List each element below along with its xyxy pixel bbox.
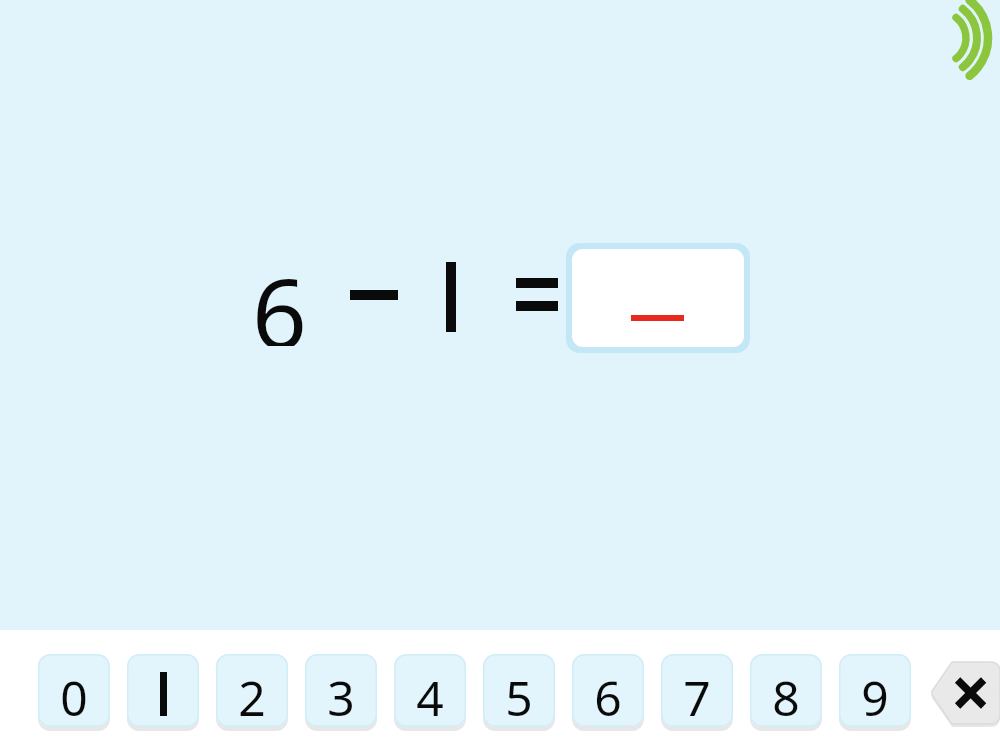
button[interactable]: Answer field — [566, 243, 750, 353]
staticText: 6 — [252, 246, 312, 346]
staticText: 4 — [394, 665, 466, 721]
staticText: 6 — [572, 665, 644, 721]
button[interactable]: 0 — [38, 654, 110, 727]
staticText: 0 — [38, 665, 110, 721]
button[interactable]: 9 — [839, 654, 911, 727]
button[interactable]: 6 — [572, 654, 644, 727]
staticText: 8 — [750, 665, 822, 721]
button[interactable]: 3 — [305, 654, 377, 727]
button[interactable]: 4 — [394, 654, 466, 727]
button[interactable]: Delete — [930, 662, 1000, 724]
button[interactable]: Play sound — [928, 6, 992, 70]
button[interactable]: 8 — [750, 654, 822, 727]
staticText: 3 — [305, 665, 377, 721]
staticText: 9 — [839, 665, 911, 721]
button[interactable]: 5 — [483, 654, 555, 727]
button[interactable]: 2 — [216, 654, 288, 727]
staticText: 2 — [216, 665, 288, 721]
staticText: 5 — [483, 665, 555, 721]
staticText: 7 — [661, 665, 733, 721]
button[interactable]: 7 — [661, 654, 733, 727]
button[interactable] — [127, 654, 199, 727]
